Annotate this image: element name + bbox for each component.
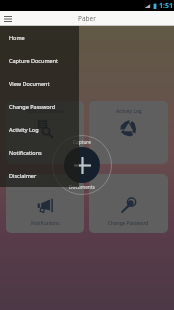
button[interactable]: View Document [0,72,79,95]
staticText: View Document [9,80,50,87]
button[interactable]: Capture [52,135,112,195]
staticText: Activity Log [116,108,142,115]
staticText: Notifications [9,149,42,156]
staticText: Disclaimer [9,172,37,179]
button[interactable]: Activity Log [89,101,168,164]
button[interactable]: Change Password [0,95,79,118]
staticText: Home [9,34,25,41]
button[interactable]: Disclaimer [0,164,79,187]
staticText: 1:51 [159,1,173,11]
button[interactable]: Activity Log [0,118,79,141]
button[interactable]: Capture Document [0,49,79,72]
staticText: Documents [69,184,95,191]
staticText: Change Password [9,103,56,110]
staticText: Change Password [108,220,149,227]
button[interactable]: View Documents [6,101,84,164]
button[interactable]: Notifications [0,141,79,164]
staticText: Capture Document [9,57,59,64]
button[interactable]: Home [0,26,79,49]
button[interactable]: Open navigation drawer [1,12,14,25]
button[interactable]: Notifications [6,174,84,233]
staticText: Notifications [31,220,60,227]
button[interactable]: Change Password [89,174,168,233]
staticText: Activity Log [9,126,39,133]
staticText: Paber [78,14,96,23]
staticText: Capture [73,139,91,146]
staticText: View Documents [26,108,64,115]
